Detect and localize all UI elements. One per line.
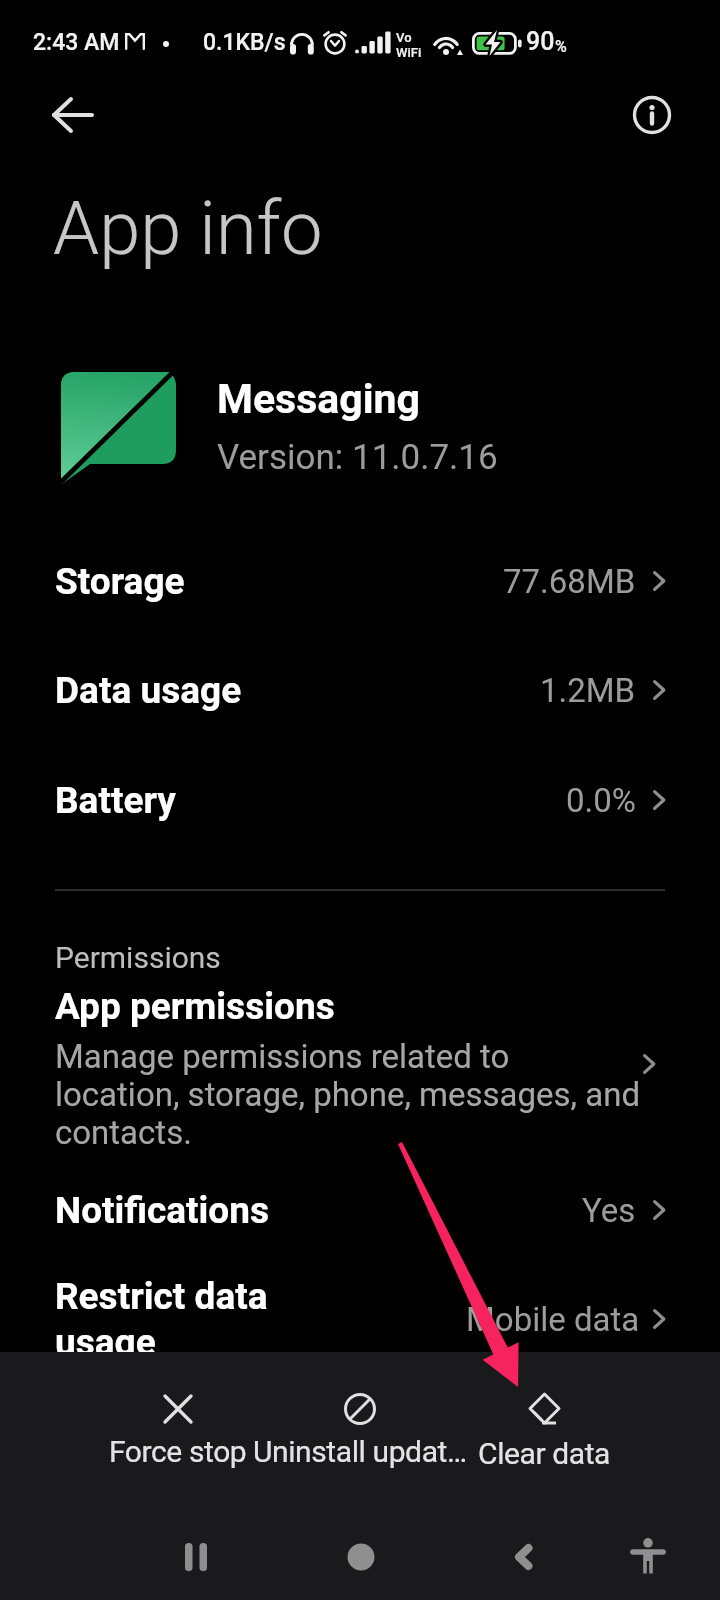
staticText: App permissions (55, 985, 335, 1028)
staticText: 0.1KB/s (203, 29, 286, 56)
button[interactable] (629, 1537, 667, 1575)
staticText: % (555, 37, 567, 56)
staticText: WiFi (396, 45, 422, 60)
button[interactable] (343, 1539, 379, 1575)
button[interactable]: Notifications (0, 1168, 720, 1252)
staticText: Manage permissions related to location, … (55, 1037, 641, 1152)
button[interactable]: Restrict data usage (0, 1258, 720, 1380)
staticText: 90 (526, 27, 555, 56)
staticText: Yes (582, 1191, 636, 1230)
staticText: App info (53, 185, 323, 272)
staticText: 77.68MB (503, 562, 636, 601)
button[interactable]: Data usage (0, 648, 720, 732)
staticText: Uninstall updat… (253, 1434, 467, 1469)
button[interactable]: Storage (0, 539, 720, 623)
staticText: Force stop (109, 1434, 247, 1469)
button[interactable]: Uninstall updat… (240, 1392, 480, 1469)
staticText: Restrict data usage (55, 1275, 268, 1364)
staticText: Notifications (55, 1189, 270, 1232)
staticText: Data usage (55, 669, 242, 712)
button[interactable] (178, 1539, 214, 1575)
button[interactable]: Battery (0, 758, 720, 842)
staticText: Mobile data (466, 1300, 640, 1339)
staticText: Messaging (217, 375, 420, 423)
staticText: Battery (55, 779, 176, 822)
button[interactable] (0, 972, 720, 1162)
staticText: 0.0% (566, 781, 636, 820)
staticText: Storage (55, 560, 185, 603)
button[interactable] (52, 97, 96, 133)
staticText: Vo (396, 30, 412, 45)
staticText: Version: 11.0.7.16 (217, 437, 498, 478)
staticText: 2:43 AM (33, 29, 120, 56)
button[interactable]: Clear data (424, 1392, 664, 1471)
button[interactable] (506, 1539, 542, 1575)
button[interactable]: Force stop (58, 1392, 298, 1469)
button[interactable] (630, 93, 674, 137)
staticText: Permissions (55, 940, 221, 975)
staticText: 1.2MB (540, 671, 636, 710)
staticText: Clear data (478, 1436, 611, 1471)
